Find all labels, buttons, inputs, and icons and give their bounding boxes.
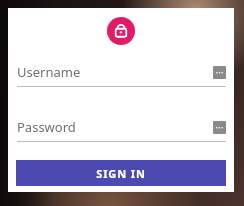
- button[interactable]: SIGN IN: [16, 160, 226, 186]
- button[interactable]: Password: [17, 117, 226, 142]
- staticText: Username: [17, 63, 81, 81]
- button[interactable]: Username: [17, 62, 226, 87]
- button[interactable]: Show keyboard options: [213, 66, 226, 79]
- button[interactable]: Show keyboard options: [213, 121, 226, 134]
- staticText: Password: [17, 118, 76, 136]
- staticText: SIGN IN: [96, 166, 146, 181]
- button[interactable]: Secure login: [107, 17, 135, 45]
